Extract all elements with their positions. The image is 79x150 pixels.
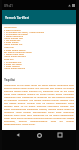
button[interactable]: Back <box>13 130 23 140</box>
staticText: Uzeri icin 2 kasik pudra sekeri Bir mikt… <box>4 46 32 57</box>
staticText: Malzemeler 4 adet yumurta 1 su bardagi t… <box>4 26 45 45</box>
staticText: Yumurtalar ve toz seker genis bir kapta … <box>4 84 74 126</box>
button[interactable]: Yemek Tarifleri <box>5 10 76 24</box>
button[interactable]: Home <box>34 130 44 140</box>
staticText: Yapilisi <box>4 78 16 82</box>
staticText: 09:41 <box>4 3 13 8</box>
staticText: Sosu icin 1 su bardagi sut 2 kasik toz s… <box>4 58 25 69</box>
staticText: Yemek Tarifleri <box>5 15 30 20</box>
button[interactable]: Recent apps <box>55 130 65 140</box>
